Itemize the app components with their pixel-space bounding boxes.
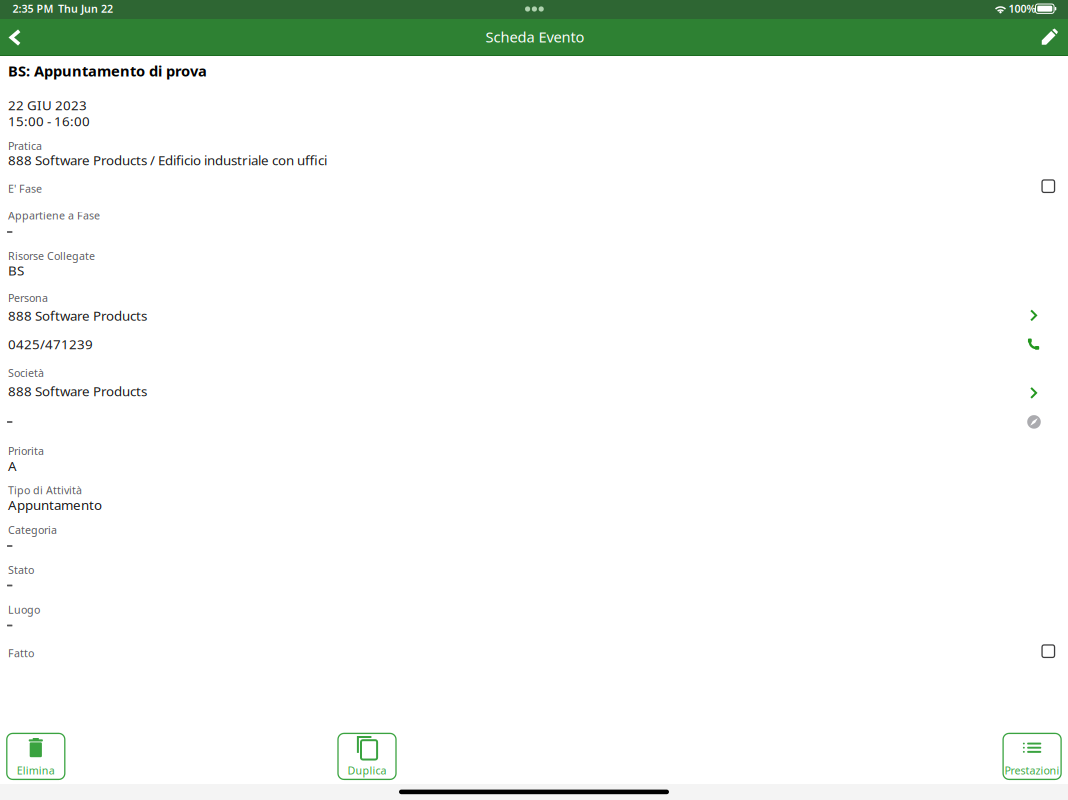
staticText: Scheda Evento	[485, 27, 584, 46]
button[interactable]: 0425/471239	[0, 332, 1068, 357]
staticText: Duplica	[347, 763, 386, 778]
button[interactable]: Back	[0, 19, 36, 55]
staticText: BS	[8, 261, 24, 279]
staticText: 100%	[1008, 1, 1035, 16]
staticText: A	[8, 457, 17, 475]
button[interactable]: Prestazioni	[1003, 733, 1061, 779]
staticText: 888 Software Products	[8, 307, 147, 324]
staticText: Pratica	[8, 139, 42, 153]
staticText: Thu Jun 22	[58, 1, 113, 16]
button[interactable]: 888 Software Products	[0, 381, 1068, 406]
button[interactable]: Elimina	[7, 733, 65, 779]
staticText: BS: Appuntamento di prova	[8, 61, 207, 80]
staticText: Risorse Collegate	[8, 249, 95, 263]
button[interactable]: Directions	[0, 410, 1068, 435]
button[interactable]: Duplica	[338, 733, 396, 779]
staticText: Appuntamento	[8, 496, 102, 514]
staticText: Priorita	[8, 444, 44, 458]
staticText: E' Fase	[8, 181, 42, 196]
staticText: 888 Software Products	[8, 382, 147, 400]
button[interactable]: Edit	[1030, 19, 1066, 55]
staticText: Prestazioni	[1005, 763, 1060, 778]
button[interactable]: 888 Software Products	[0, 303, 1068, 328]
staticText: Persona	[8, 291, 48, 305]
staticText: 888 Software Products / Edificio industr…	[8, 151, 327, 169]
staticText: 0425/471239	[8, 335, 93, 353]
staticText: 22 GIU 2023	[8, 96, 87, 114]
staticText: Appartiene a Fase	[8, 208, 100, 223]
staticText: Elimina	[17, 763, 55, 778]
staticText: Società	[8, 366, 44, 380]
staticText: 15:00 - 16:00	[8, 112, 90, 130]
staticText: Tipo di Attività	[8, 483, 82, 497]
button[interactable]: E' Fase checkbox	[1036, 174, 1060, 198]
staticText: Categoria	[8, 523, 57, 537]
staticText: Luogo	[8, 602, 40, 617]
staticText: 2:35 PM	[12, 1, 53, 16]
staticText: Stato	[8, 563, 34, 577]
staticText: Fatto	[8, 646, 34, 660]
button[interactable]: Fatto checkbox	[1036, 639, 1060, 663]
